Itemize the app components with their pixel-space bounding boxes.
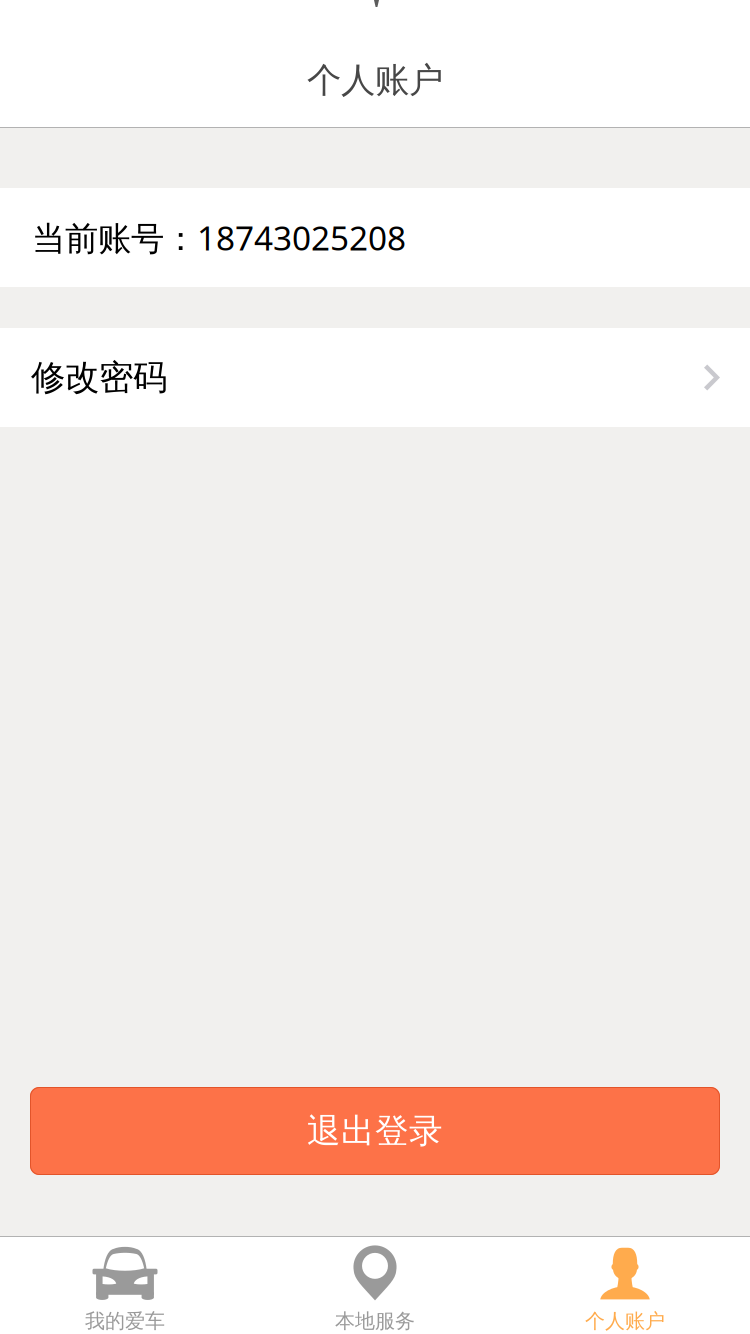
staticText: 修改密码	[31, 356, 167, 399]
button[interactable]: 我的爱车	[0, 1232, 250, 1334]
button[interactable]: 退出登录	[30, 1087, 720, 1175]
staticText: 本地服务	[335, 1308, 415, 1334]
button[interactable]: 修改密码	[0, 328, 750, 427]
button[interactable]: 本地服务	[250, 1232, 500, 1334]
staticText: 个人账户	[307, 59, 443, 102]
staticText: 个人账户	[585, 1308, 665, 1334]
button[interactable]: 个人账户	[500, 1232, 750, 1334]
staticText: 当前账号：18743025208	[32, 215, 406, 260]
staticText: 退出登录	[307, 1110, 443, 1152]
staticText: 我的爱车	[85, 1308, 165, 1334]
